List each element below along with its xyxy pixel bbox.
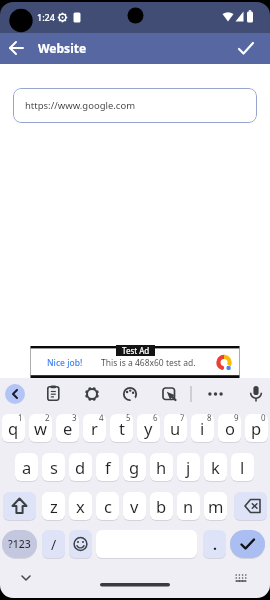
staticText: 7	[180, 414, 185, 423]
staticText: 5	[126, 414, 131, 423]
button[interactable]: o	[218, 414, 241, 442]
button[interactable]: r	[83, 414, 106, 442]
staticText: 3	[72, 414, 77, 423]
staticText: x	[76, 495, 85, 517]
staticText: Nice job!	[47, 357, 83, 369]
button[interactable]	[233, 35, 259, 61]
staticText: .	[213, 535, 217, 554]
button[interactable]: c	[96, 492, 119, 520]
button[interactable]: ?123	[2, 530, 37, 558]
button[interactable]: v	[123, 492, 146, 520]
button[interactable]: a	[15, 453, 38, 481]
button[interactable]	[234, 492, 267, 520]
staticText: q	[8, 417, 19, 439]
button[interactable]: t	[110, 414, 133, 442]
staticText: s	[50, 456, 58, 478]
staticText: j	[186, 456, 191, 478]
button[interactable]: k	[204, 453, 227, 481]
staticText: 2	[45, 414, 50, 423]
button[interactable]: q	[2, 414, 25, 442]
button[interactable]: w	[29, 414, 52, 442]
staticText: n	[183, 495, 194, 517]
button[interactable]	[3, 492, 36, 520]
staticText: m	[208, 495, 224, 517]
staticText: Test Ad	[122, 345, 150, 356]
staticText: 8	[207, 414, 212, 423]
button[interactable]: l	[231, 453, 254, 481]
button[interactable]: https://www.google.com	[13, 88, 257, 123]
staticText: o	[225, 417, 235, 439]
staticText: Website	[38, 40, 87, 56]
staticText: 1	[18, 414, 23, 423]
button[interactable]: u	[164, 414, 187, 442]
staticText: h	[156, 456, 167, 478]
button[interactable]: i	[191, 414, 214, 442]
staticText: z	[50, 495, 58, 517]
staticText: b	[156, 495, 167, 517]
staticText: l	[240, 456, 245, 478]
button[interactable]: z	[42, 492, 65, 520]
button[interactable]: s	[42, 453, 65, 481]
staticText: v	[130, 495, 139, 517]
staticText: 0	[261, 414, 266, 423]
button[interactable]: f	[96, 453, 119, 481]
staticText: i	[200, 417, 205, 439]
staticText: e	[63, 417, 73, 439]
staticText: y	[144, 417, 153, 439]
staticText: https://www.google.com	[25, 99, 136, 112]
staticText: 1:24	[37, 11, 55, 23]
staticText: f	[105, 456, 111, 478]
button[interactable]	[4, 35, 30, 61]
button[interactable]: h	[150, 453, 173, 481]
staticText: 9	[234, 414, 239, 423]
button[interactable]: d	[69, 453, 92, 481]
button[interactable]	[230, 530, 265, 558]
button[interactable]: j	[177, 453, 200, 481]
staticText: k	[211, 456, 220, 478]
staticText: ?123	[8, 537, 31, 551]
button[interactable]: y	[137, 414, 160, 442]
staticText: g	[129, 456, 140, 478]
staticText: t	[119, 417, 125, 439]
button[interactable]: Nice job!	[30, 346, 240, 378]
button[interactable]: b	[150, 492, 173, 520]
staticText: p	[251, 417, 262, 439]
button[interactable]	[69, 530, 92, 558]
button[interactable]: p	[245, 414, 268, 442]
staticText: 6	[153, 414, 158, 423]
staticText: a	[22, 456, 32, 478]
button[interactable]: m	[204, 492, 227, 520]
button[interactable]: .	[203, 530, 226, 558]
staticText: d	[75, 456, 86, 478]
staticText: c	[104, 495, 112, 517]
staticText: r	[91, 417, 98, 439]
button[interactable]: x	[69, 492, 92, 520]
button[interactable]: /	[42, 530, 65, 558]
button[interactable]: g	[123, 453, 146, 481]
staticText: This is a 468x60 test ad.	[101, 357, 196, 369]
staticText: 4	[99, 414, 104, 423]
staticText: w	[34, 417, 47, 439]
staticText: u	[170, 417, 181, 439]
button[interactable]: n	[177, 492, 200, 520]
button[interactable]: e	[56, 414, 79, 442]
staticText: /	[51, 535, 57, 554]
button[interactable]	[5, 384, 25, 404]
